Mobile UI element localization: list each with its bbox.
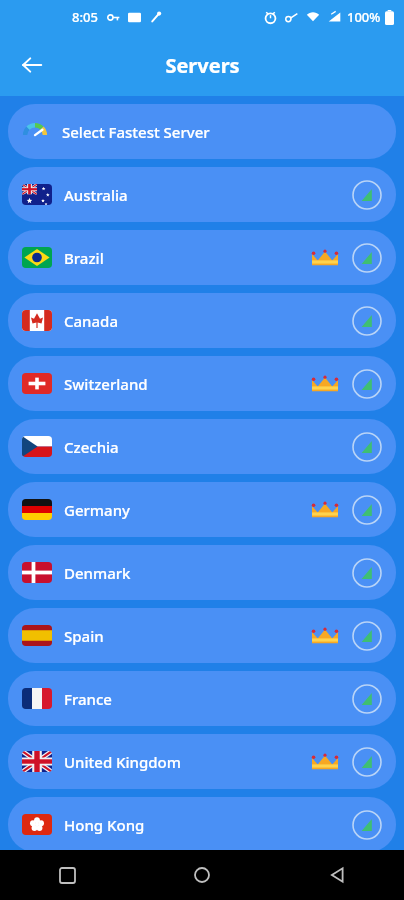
- button[interactable]: France: [8, 671, 396, 726]
- staticText: Spain: [64, 626, 104, 646]
- button[interactable]: Home: [134, 850, 269, 900]
- button[interactable]: Canada: [8, 293, 396, 348]
- button[interactable]: Switzerland: [8, 356, 396, 411]
- button[interactable]: Back: [269, 850, 404, 900]
- staticText: Servers: [165, 52, 240, 79]
- button[interactable]: Czechia: [8, 419, 396, 474]
- staticText: Australia: [64, 185, 128, 205]
- button[interactable]: United Kingdom: [8, 734, 396, 789]
- staticText: Germany: [64, 500, 130, 520]
- button[interactable]: Denmark: [8, 545, 396, 600]
- button[interactable]: Spain: [8, 608, 396, 663]
- staticText: Switzerland: [64, 374, 148, 394]
- button[interactable]: Germany: [8, 482, 396, 537]
- button[interactable]: Select Fastest Server: [8, 104, 396, 159]
- button[interactable]: Brazil: [8, 230, 396, 285]
- button[interactable]: Australia: [8, 167, 396, 222]
- button[interactable]: Recent apps: [0, 850, 134, 900]
- staticText: Czechia: [64, 437, 119, 457]
- staticText: Hong Kong: [64, 815, 145, 835]
- staticText: Brazil: [64, 248, 104, 268]
- staticText: Select Fastest Server: [62, 122, 210, 142]
- staticText: United Kingdom: [64, 752, 181, 772]
- staticText: Denmark: [64, 563, 131, 583]
- button[interactable]: Back: [10, 43, 54, 87]
- staticText: Canada: [64, 311, 118, 331]
- button[interactable]: Hong Kong: [8, 797, 396, 852]
- staticText: France: [64, 689, 112, 709]
- staticText: 8:05: [72, 8, 98, 26]
- staticText: 100%: [347, 8, 381, 26]
